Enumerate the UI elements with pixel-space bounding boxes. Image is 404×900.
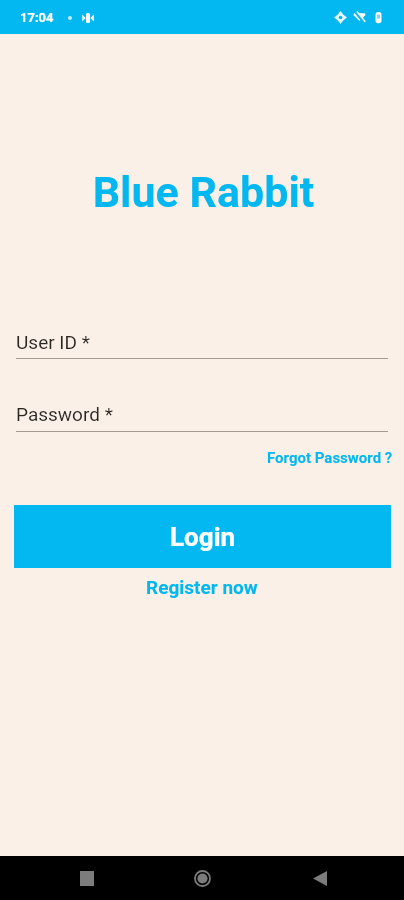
staticText: Blue Rabbit [3, 167, 404, 217]
staticText: Forgot Password ? [267, 449, 393, 467]
staticText: Register now [146, 576, 258, 598]
button[interactable]: Forgot Password ? [267, 449, 393, 467]
button[interactable]: Home [180, 856, 224, 900]
button[interactable]: Register now [146, 576, 258, 598]
staticText: Login [170, 522, 236, 552]
button[interactable]: Login [14, 505, 391, 568]
button[interactable]: Back [295, 856, 339, 900]
staticText: Password * [16, 403, 113, 425]
button[interactable]: Recents [65, 856, 109, 900]
staticText: User ID * [16, 331, 90, 353]
staticText: 17:04 [20, 10, 54, 25]
